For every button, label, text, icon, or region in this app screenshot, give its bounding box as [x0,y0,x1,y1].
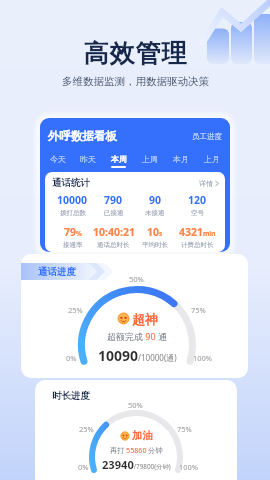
staticText: 通话统计 [52,177,90,189]
staticText: 通话进度 [38,266,76,278]
staticText: 拨打总数 [60,209,86,217]
staticText: 计费总时长 [181,241,214,249]
button[interactable]: 4321min [176,225,218,249]
staticText: 75% [191,305,206,315]
staticText: 超额完成 90 通 [107,330,167,341]
staticText: 4321min [179,225,216,239]
staticText: 时长进度 [52,390,90,402]
button[interactable]: 10:40:21 [93,225,134,249]
button[interactable]: 昨天 [73,154,103,168]
staticText: 79% [64,225,82,239]
staticText: 超神 [132,311,158,326]
staticText: 高效管理 [83,38,187,69]
button[interactable]: 今天 [43,154,73,168]
staticText: 空号 [191,209,204,217]
staticText: 多维数据监测，用数据驱动决策 [62,75,209,88]
staticText: 员工进度 [192,132,222,141]
staticText: 通话总时长 [97,241,130,249]
staticText: 100% [193,353,213,363]
button[interactable]: 详情 [199,179,219,188]
staticText: 10000 [57,193,88,207]
button[interactable]: 上周 [134,154,165,168]
button[interactable]: 10000 [52,193,93,217]
staticText: 加油 [132,429,153,442]
staticText: 平均时长 [142,241,168,249]
staticText: 再打 55860 分钟 [110,445,163,455]
staticText: 上月 [204,154,220,164]
staticText: 上周 [142,154,158,164]
staticText: 10090/10000(通) [98,346,177,362]
staticText: 接通率 [63,241,83,249]
staticText: 120 [188,193,207,207]
staticText: 0% [66,353,77,363]
staticText: 0% [78,462,89,472]
staticText: 25% [79,424,94,434]
button[interactable]: 120 [176,193,218,217]
button[interactable]: 79% [52,225,93,249]
staticText: 10s [147,225,163,239]
staticText: 未接通 [145,209,165,217]
button[interactable]: 外呼数据看板 [40,118,230,252]
staticText: 23940/79800(分钟) [102,457,171,472]
staticText: 已接通 [104,209,124,217]
button[interactable]: 本周 [103,154,134,168]
staticText: 100% [179,462,199,472]
button[interactable]: 790 [93,193,134,217]
staticText: 昨天 [80,154,96,164]
staticText: 外呼数据看板 [48,129,117,143]
button[interactable]: 本月 [165,154,196,168]
staticText: 10:40:21 [93,225,134,239]
staticText: 详情 [199,179,213,188]
staticText: 今天 [50,154,66,164]
staticText: 25% [68,305,83,315]
button[interactable]: 90 [134,193,176,217]
staticText: 50% [129,274,144,284]
button[interactable]: 上月 [196,154,227,168]
staticText: 790 [104,193,123,207]
staticText: 90 [149,193,162,207]
staticText: 本周 [111,154,127,164]
staticText: 本月 [173,154,189,164]
staticText: 50% [128,400,143,410]
button[interactable]: 10s [134,225,176,249]
staticText: 75% [177,424,192,434]
